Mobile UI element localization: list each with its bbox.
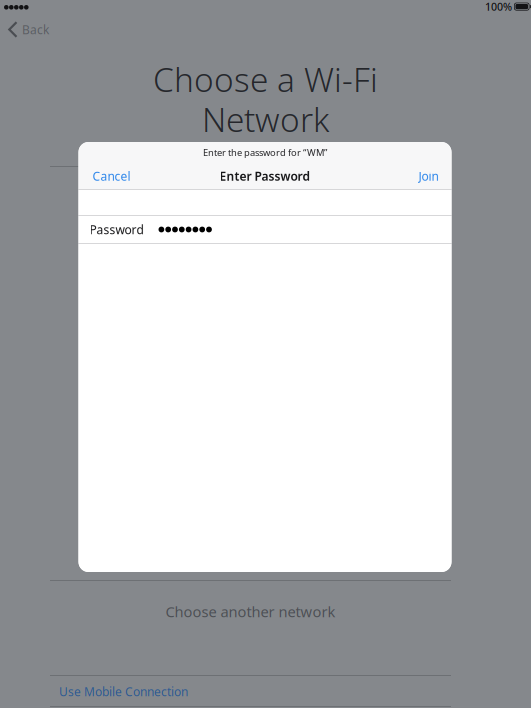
staticText: Choose a Wi-Fi — [153, 57, 378, 101]
button[interactable]: Back — [0, 15, 59, 44]
staticText: Back — [22, 21, 49, 37]
staticText: Cancel — [92, 168, 130, 184]
staticText: Use Mobile Connection — [59, 683, 188, 699]
button[interactable]: Join — [404, 163, 451, 189]
staticText: Join — [418, 168, 438, 184]
button[interactable]: Password — [78, 216, 451, 243]
button[interactable]: Choose another network — [50, 564, 451, 659]
staticText: 100% — [485, 0, 512, 14]
staticText: Enter the password for “WM” — [203, 146, 327, 159]
staticText: Password — [89, 221, 143, 237]
button[interactable]: Use Mobile Connection — [50, 676, 451, 707]
staticText: Enter Password — [219, 168, 310, 184]
button[interactable]: Cancel — [78, 163, 144, 189]
staticText: Network — [202, 97, 329, 141]
staticText: Choose another network — [165, 602, 335, 621]
